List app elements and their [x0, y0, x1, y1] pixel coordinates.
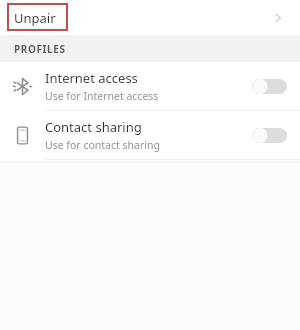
other: Bluetooth — [0, 62, 45, 110]
staticText: Use for Internet access — [45, 89, 159, 103]
other: Phone — [0, 111, 45, 159]
button[interactable]: Phone — [0, 111, 300, 159]
staticText: Unpair — [14, 9, 56, 27]
button[interactable]: Unpair — [0, 0, 300, 35]
staticText: Contact sharing — [45, 118, 142, 136]
button[interactable]: Bluetooth — [0, 62, 300, 110]
staticText: Internet access — [45, 69, 138, 87]
staticText: Use for contact sharing — [45, 138, 160, 152]
other: Open — [269, 9, 287, 27]
button[interactable]: Internet access toggle — [251, 71, 287, 101]
button[interactable]: Contact sharing toggle — [251, 120, 287, 150]
staticText: PROFILES — [14, 42, 66, 56]
